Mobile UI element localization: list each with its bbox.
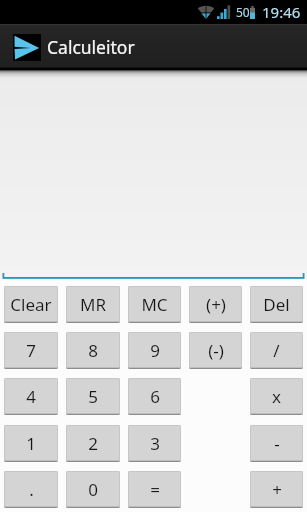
button[interactable]: x	[250, 378, 303, 415]
other: Mobile signal	[217, 5, 231, 19]
other: Battery 50 percent	[250, 6, 255, 19]
staticText: =	[150, 478, 160, 501]
button[interactable]: 7	[4, 332, 58, 369]
staticText: -	[274, 432, 280, 455]
staticText: 9	[150, 339, 160, 362]
button[interactable]: +	[250, 471, 303, 508]
other: Wi-Fi	[197, 6, 215, 19]
staticText: MC	[141, 293, 168, 316]
staticText: x	[272, 385, 281, 408]
staticText: 50	[236, 4, 250, 20]
staticText: MR	[80, 293, 106, 316]
button[interactable]: 8	[66, 332, 120, 369]
staticText: /	[273, 339, 280, 362]
button[interactable]: 5	[66, 378, 120, 415]
staticText: 19:46	[262, 2, 301, 22]
button[interactable]: .	[4, 471, 58, 508]
other: Calculeitor app icon	[13, 34, 41, 61]
staticText: 7	[26, 339, 36, 362]
button[interactable]: 2	[66, 425, 120, 462]
button[interactable]: Clear	[4, 286, 58, 323]
button[interactable]: Calculator display	[0, 70, 307, 279]
staticText: 0	[88, 478, 98, 501]
button[interactable]: 0	[66, 471, 120, 508]
button[interactable]: MC	[128, 286, 181, 323]
button[interactable]: Del	[250, 286, 303, 323]
button[interactable]: 9	[128, 332, 181, 369]
button[interactable]: /	[250, 332, 303, 369]
staticText: +	[272, 478, 282, 501]
staticText: 5	[88, 385, 98, 408]
button[interactable]: =	[128, 471, 181, 508]
button[interactable]: 3	[128, 425, 181, 462]
button[interactable]: MR	[66, 286, 120, 323]
staticText: Calculeitor	[47, 35, 135, 59]
staticText: 8	[88, 339, 98, 362]
staticText: .	[29, 478, 34, 501]
staticText: Clear	[10, 293, 52, 316]
staticText: 4	[26, 385, 36, 408]
button[interactable]: 6	[128, 378, 181, 415]
button[interactable]: 1	[4, 425, 58, 462]
staticText: Del	[263, 293, 290, 316]
staticText: (+)	[206, 293, 226, 316]
button[interactable]: 4	[4, 378, 58, 415]
staticText: 6	[150, 385, 160, 408]
button[interactable]: -	[250, 425, 303, 462]
staticText: 1	[26, 432, 36, 455]
staticText: 3	[150, 432, 160, 455]
button[interactable]: (-)	[189, 332, 242, 369]
staticText: (-)	[208, 339, 224, 362]
staticText: 2	[88, 432, 98, 455]
button[interactable]: (+)	[189, 286, 242, 323]
